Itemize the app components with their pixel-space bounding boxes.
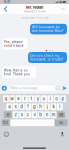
staticText: Yesterday 11:29 AM <box>21 16 48 19</box>
staticText: Mr. Nolan <box>26 5 43 10</box>
staticText: y <box>37 96 39 101</box>
staticText: k <box>52 104 54 109</box>
button[interactable]: g <box>32 103 37 110</box>
staticText: j <box>47 104 48 109</box>
button[interactable]: a <box>6 103 12 110</box>
staticText: o <box>55 96 58 101</box>
staticText: ⇧ <box>6 112 10 117</box>
button[interactable]: v <box>32 111 37 118</box>
staticText: b <box>39 112 42 117</box>
button[interactable]: More options <box>59 4 68 14</box>
button[interactable]: n <box>44 111 50 118</box>
staticText: s <box>14 104 16 109</box>
button[interactable]: Add attachment <box>2 86 7 91</box>
button[interactable]: o <box>54 95 59 102</box>
button[interactable]: f <box>25 103 31 110</box>
staticText: m <box>51 112 55 117</box>
button[interactable]: r <box>22 95 28 102</box>
button[interactable]: 123 <box>1 119 10 126</box>
staticText: q <box>4 96 7 101</box>
button[interactable]: Go <box>55 119 67 126</box>
button[interactable]: Emoji keyboard <box>2 130 11 138</box>
staticText: z <box>14 112 16 117</box>
button[interactable]: y <box>35 95 40 102</box>
button[interactable]: h <box>38 103 44 110</box>
button[interactable]: j <box>44 103 50 110</box>
button[interactable]: z <box>13 111 18 118</box>
staticText: Can you check my homework, is it right? <box>30 54 64 61</box>
staticText: Go <box>59 121 63 125</box>
staticText: n <box>46 112 49 117</box>
staticText: e <box>17 96 20 101</box>
button[interactable]: k <box>51 103 56 110</box>
button[interactable] <box>10 119 54 126</box>
button[interactable]: e <box>16 95 21 102</box>
button[interactable]: w <box>9 95 15 102</box>
staticText: p <box>61 96 64 101</box>
staticText: r <box>24 96 26 101</box>
staticText: Will homework be due tomorrow Mon? <box>32 25 64 33</box>
button[interactable]: s <box>13 103 18 110</box>
staticText: x <box>21 112 23 117</box>
staticText: v <box>33 112 35 117</box>
staticText: Yes, please send it back. <box>4 40 25 47</box>
button[interactable]: ⇧ <box>4 111 12 118</box>
button[interactable]: m <box>51 111 56 118</box>
staticText: 9:41 <box>4 0 10 4</box>
button[interactable]: c <box>25 111 31 118</box>
staticText: u <box>42 96 45 101</box>
staticText: g <box>33 104 36 109</box>
button[interactable]: p <box>60 95 66 102</box>
staticText: w <box>10 96 14 101</box>
button[interactable]: Dictation <box>58 130 67 138</box>
staticText: d <box>20 104 23 109</box>
button[interactable]: l <box>57 103 63 110</box>
button[interactable]: ⌫ <box>57 111 65 118</box>
staticText: i <box>50 96 51 101</box>
staticText: Wow, that is so kind. Thank you. <box>4 68 31 76</box>
button[interactable]: x <box>19 111 25 118</box>
staticText: f <box>27 104 29 109</box>
staticText: c <box>27 112 30 117</box>
button[interactable]: q <box>3 95 9 102</box>
staticText: 123 <box>3 121 8 124</box>
button[interactable]: i <box>47 95 53 102</box>
button[interactable]: b <box>38 111 44 118</box>
staticText: Write a message… <box>10 86 40 90</box>
button[interactable]: t <box>28 95 34 102</box>
staticText: t <box>31 96 32 101</box>
staticText: Mathematics Teacher <box>23 10 45 13</box>
staticText: ⌫ <box>59 112 64 117</box>
button[interactable]: Send <box>62 86 67 91</box>
button[interactable]: d <box>19 103 25 110</box>
staticText: a <box>8 104 10 109</box>
staticText: l <box>59 104 60 109</box>
button[interactable]: u <box>41 95 47 102</box>
staticText: h <box>39 104 42 109</box>
button[interactable]: Back <box>1 4 10 14</box>
